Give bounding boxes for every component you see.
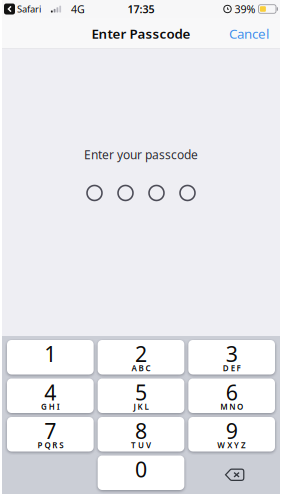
staticText: K xyxy=(137,401,142,412)
staticText: V xyxy=(146,440,151,450)
staticText: 6 xyxy=(226,378,238,406)
staticText: M xyxy=(220,401,227,412)
staticText: P xyxy=(37,440,42,450)
staticText: 0 xyxy=(135,455,147,483)
staticText: I xyxy=(57,401,60,412)
staticText: E xyxy=(231,363,235,373)
staticText: Cancel xyxy=(229,25,269,42)
staticText: S xyxy=(59,440,63,450)
staticText: Enter your passcode xyxy=(84,146,198,162)
staticText: 4G xyxy=(71,2,85,16)
button[interactable]: Cancel xyxy=(218,17,280,50)
staticText: F xyxy=(237,363,241,373)
staticText: X xyxy=(227,440,232,450)
staticText: 1 xyxy=(44,340,56,368)
button[interactable]: Delete xyxy=(188,455,275,490)
staticText: R xyxy=(52,440,57,450)
staticText: J xyxy=(134,401,136,412)
staticText: Safari xyxy=(17,3,41,15)
button[interactable]: 0 xyxy=(98,455,184,490)
staticText: Y xyxy=(234,440,239,450)
staticText: 7 xyxy=(44,417,56,445)
button[interactable]: 1 xyxy=(7,340,94,374)
staticText: 17:35 xyxy=(127,2,154,16)
staticText: Enter Passcode xyxy=(91,25,190,42)
staticText: 3 xyxy=(226,340,238,368)
button[interactable]: 3 xyxy=(188,340,275,374)
staticText: 4 xyxy=(44,378,56,406)
button[interactable]: 4 xyxy=(7,378,94,413)
staticText: 39% xyxy=(234,2,255,16)
staticText: C xyxy=(145,363,150,373)
staticText: B xyxy=(138,363,143,373)
staticText: H xyxy=(49,401,55,412)
staticText: W xyxy=(217,440,225,450)
staticText: Q xyxy=(44,440,50,450)
staticText: D xyxy=(223,363,229,373)
button[interactable]: 2 xyxy=(98,340,184,374)
button[interactable]: 6 xyxy=(188,378,275,413)
staticText: U xyxy=(138,440,144,450)
staticText: Z xyxy=(241,440,246,450)
button[interactable]: 7 xyxy=(7,417,94,451)
staticText: G xyxy=(41,401,47,412)
staticText: O xyxy=(237,401,243,412)
button[interactable]: 5 xyxy=(98,378,184,413)
button[interactable]: 8 xyxy=(98,417,184,451)
staticText: L xyxy=(144,401,148,412)
button[interactable]: 9 xyxy=(188,417,275,451)
staticText: 8 xyxy=(135,417,147,445)
staticText: A xyxy=(132,363,137,373)
staticText: T xyxy=(131,440,136,450)
staticText: 9 xyxy=(226,417,238,445)
staticText: N xyxy=(229,401,235,412)
staticText: 5 xyxy=(135,378,147,406)
staticText: 2 xyxy=(135,340,147,368)
